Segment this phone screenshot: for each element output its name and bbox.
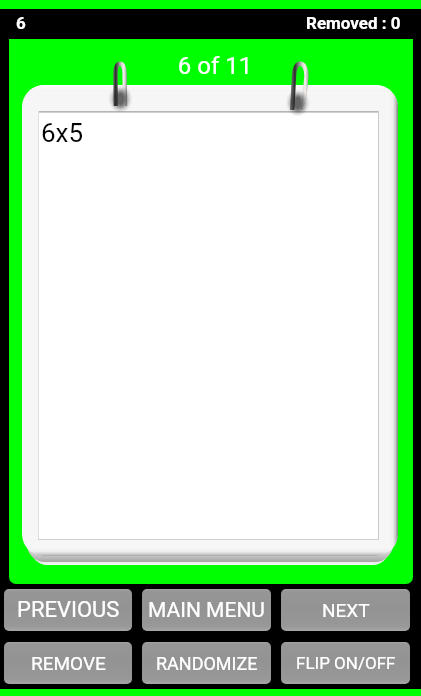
- staticText: NEXT: [322, 599, 370, 621]
- button[interactable]: REMOVE: [4, 642, 132, 684]
- button[interactable]: MAIN MENU: [142, 589, 271, 631]
- staticText: REMOVE: [31, 652, 106, 674]
- staticText: Removed : 0: [306, 13, 401, 33]
- button[interactable]: RANDOMIZE: [142, 642, 271, 684]
- staticText: 6 of 11: [13, 52, 413, 80]
- button[interactable]: NEXT: [281, 589, 410, 631]
- button[interactable]: FLIP ON/OFF: [281, 642, 410, 684]
- button[interactable]: PREVIOUS: [4, 589, 132, 631]
- staticText: 6x5: [41, 118, 84, 148]
- staticText: MAIN MENU: [148, 598, 265, 623]
- staticText: PREVIOUS: [17, 597, 120, 623]
- staticText: RANDOMIZE: [156, 653, 258, 674]
- button[interactable]: Flash card 6x5, tap to flip: [22, 85, 398, 567]
- staticText: FLIP ON/OFF: [296, 653, 396, 673]
- staticText: 6: [16, 13, 26, 33]
